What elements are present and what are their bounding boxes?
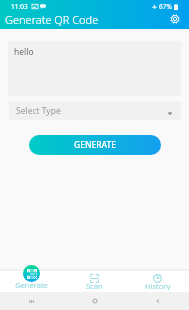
staticText: Generate xyxy=(15,280,48,290)
staticText: History xyxy=(145,281,171,290)
staticText: 11:03 xyxy=(11,2,28,11)
button[interactable]: Scan xyxy=(63,265,126,292)
staticText: hello xyxy=(14,46,34,58)
button[interactable]: Select Type xyxy=(9,101,181,120)
button[interactable]: History xyxy=(126,265,189,292)
button[interactable]: Generate xyxy=(0,265,63,292)
staticText: GENERATE xyxy=(74,139,117,151)
button[interactable]: GENERATE xyxy=(29,135,161,155)
staticText: Generate QR Code xyxy=(5,12,99,27)
staticText: Scan xyxy=(86,281,103,290)
button[interactable]: Settings xyxy=(168,12,182,26)
staticText: 67% xyxy=(159,2,172,11)
button[interactable]: hello xyxy=(8,41,181,96)
staticText: Select Type xyxy=(16,105,61,117)
